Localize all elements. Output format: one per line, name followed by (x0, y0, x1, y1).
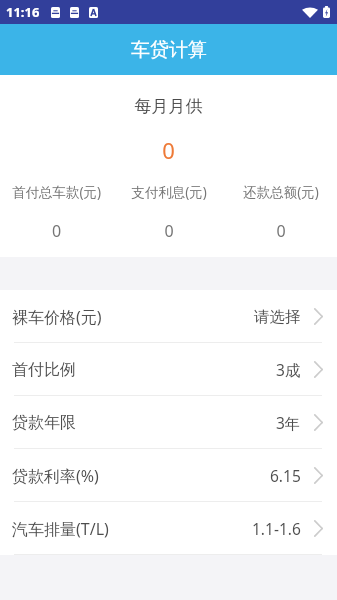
button[interactable]: 汽车排量(T/L) (0, 502, 337, 555)
staticText: 请选择 (254, 307, 301, 327)
button[interactable]: 裸车价格(元) (0, 290, 337, 343)
staticText: 0 (113, 220, 225, 242)
staticText: 汽车排量(T/L) (12, 518, 109, 540)
staticText: 0 (225, 220, 337, 242)
staticText: 车贷计算 (131, 38, 207, 62)
staticText: 6.15 (270, 465, 301, 486)
staticText: 首付比例 (12, 360, 76, 380)
staticText: 3成 (276, 359, 301, 380)
staticText: 贷款利率(%) (12, 465, 99, 487)
staticText: 还款总额(元) (225, 183, 337, 201)
staticText: 1.1-1.6 (252, 518, 301, 539)
button[interactable]: 贷款年限 (0, 396, 337, 449)
staticText: 0 (0, 135, 337, 165)
button[interactable]: 首付比例 (0, 343, 337, 396)
staticText: 支付利息(元) (113, 183, 225, 201)
staticText: 11:16 (6, 3, 40, 21)
staticText: 3年 (276, 412, 301, 433)
staticText: 裸车价格(元) (12, 306, 102, 328)
staticText: 0 (0, 220, 113, 242)
staticText: 每月月供 (0, 96, 337, 117)
staticText: 贷款年限 (12, 413, 76, 433)
button[interactable]: 贷款利率(%) (0, 449, 337, 502)
staticText: 首付总车款(元) (0, 183, 113, 201)
